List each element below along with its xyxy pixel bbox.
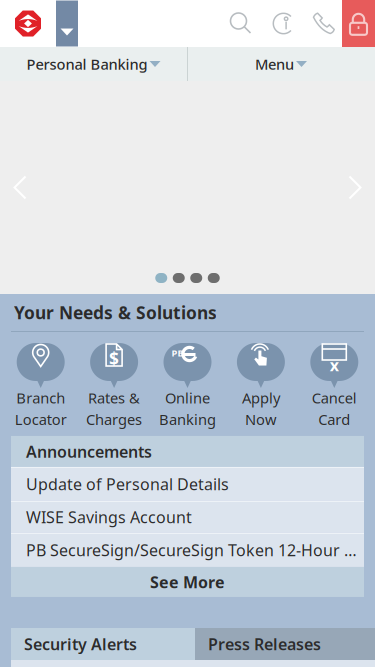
button[interactable]: Update of Personal Details (11, 467, 364, 501)
button[interactable]: Information (262, 0, 305, 47)
button[interactable]: Search (219, 0, 262, 47)
button[interactable]: PB SecureSign/SecureSign Token 12-Hour A… (11, 533, 364, 567)
staticText: Charges (86, 409, 142, 429)
staticText: Banking (159, 409, 216, 429)
staticText: See More (150, 571, 225, 592)
button[interactable]: Open navigation menu (56, 0, 78, 46)
staticText: PB (171, 347, 183, 359)
button[interactable]: PB (151, 343, 224, 429)
staticText: Rates & (88, 388, 140, 407)
staticText: Update of Personal Details (26, 473, 229, 494)
button[interactable]: x (298, 343, 371, 429)
staticText: Card (318, 409, 350, 429)
staticText: Personal Banking (26, 54, 147, 74)
staticText: Press Releases (208, 633, 321, 655)
button[interactable]: Personal Banking (0, 47, 187, 81)
staticText: Apply (242, 388, 280, 407)
staticText: PB SecureSign/SecureSign Token 12-Hour A… (26, 539, 364, 560)
button[interactable]: Apply (224, 343, 298, 429)
button[interactable]: See More (11, 567, 364, 597)
staticText: Menu (255, 54, 294, 74)
staticText: Locator (15, 409, 67, 429)
button[interactable]: Call us (305, 0, 342, 47)
staticText: Cancel (312, 388, 357, 407)
button[interactable]: Public Bank home (0, 0, 56, 47)
button[interactable]: Branch (4, 343, 77, 429)
staticText: Your Needs & Solutions (14, 301, 217, 324)
button[interactable]: Menu (187, 47, 375, 81)
button[interactable]: $ (77, 343, 151, 429)
button[interactable]: Security Alerts (11, 628, 195, 660)
staticText: Announcements (26, 441, 152, 462)
staticText: x (330, 354, 339, 376)
button[interactable]: Secure login (342, 0, 375, 47)
button[interactable]: Press Releases (195, 628, 375, 660)
staticText: WISE Savings Account (26, 506, 192, 527)
staticText: Now (245, 409, 277, 429)
staticText: Online (165, 388, 210, 407)
button[interactable]: WISE Savings Account (11, 501, 364, 533)
button[interactable]: Announcements (11, 436, 364, 467)
staticText: Branch (16, 388, 65, 407)
staticText: Security Alerts (24, 633, 137, 655)
staticText: $ (109, 347, 119, 370)
